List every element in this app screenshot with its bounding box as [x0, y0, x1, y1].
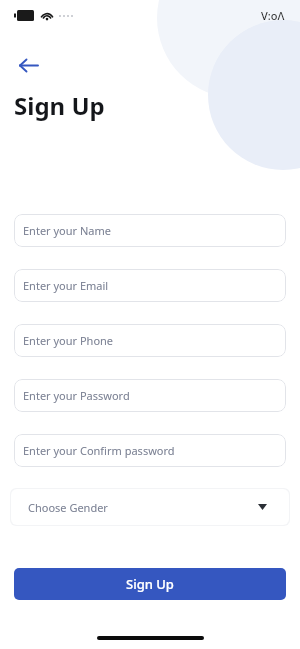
button[interactable]: Enter your Email: [14, 269, 286, 302]
button[interactable]: Enter your Confirm password: [14, 434, 286, 467]
staticText: Enter your Email: [23, 278, 109, 293]
staticText: Enter your Confirm password: [23, 443, 175, 458]
staticText: Enter your Password: [23, 388, 130, 403]
staticText: Enter your Phone: [23, 333, 114, 348]
button[interactable]: Back: [10, 47, 46, 83]
staticText: Sign Up: [14, 89, 105, 122]
button[interactable]: Enter your Name: [14, 214, 286, 247]
staticText: Enter your Name: [23, 223, 111, 238]
button[interactable]: Enter your Password: [14, 379, 286, 412]
button[interactable]: Enter your Phone: [14, 324, 286, 357]
button[interactable]: Sign Up: [14, 568, 286, 600]
staticText: Sign Up: [126, 575, 174, 593]
staticText: V:oΛ: [261, 8, 285, 23]
staticText: Choose Gender: [28, 500, 108, 515]
button[interactable]: Choose Gender: [11, 489, 289, 525]
